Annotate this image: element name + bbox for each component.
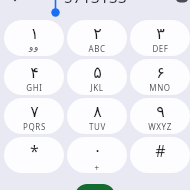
button[interactable]: ۰ <box>67 137 127 173</box>
staticText: ۸ <box>93 102 102 121</box>
staticText: JKL <box>90 82 104 93</box>
button[interactable]: ۱ <box>4 20 64 56</box>
staticText: PQRS <box>23 121 46 132</box>
button[interactable]: ۴ <box>4 59 64 95</box>
staticText: وو <box>29 42 39 52</box>
staticText: ABC <box>88 43 106 54</box>
staticText: # <box>155 140 166 162</box>
staticText: 5713133 <box>64 0 127 7</box>
button[interactable]: ۶ <box>130 59 190 95</box>
button[interactable]: ۲ <box>67 20 127 56</box>
staticText: DEF <box>152 43 169 54</box>
staticText: ۱ <box>30 24 39 43</box>
staticText: ۵ <box>93 63 102 82</box>
staticText: ۹ <box>156 102 165 121</box>
staticText: + <box>94 162 100 173</box>
staticText: ۷ <box>30 102 39 121</box>
staticText: MNO <box>149 82 171 93</box>
staticText: ۳ <box>156 24 165 43</box>
button[interactable]: ۹ <box>130 98 190 134</box>
button[interactable]: * <box>4 137 64 173</box>
staticText: ۴ <box>30 63 39 82</box>
staticText: WXYZ <box>148 121 172 132</box>
staticText: ۲ <box>93 24 102 43</box>
button[interactable]: ۵ <box>67 59 127 95</box>
button[interactable]: ۸ <box>67 98 127 134</box>
staticText: * <box>30 140 39 162</box>
button[interactable]: ۳ <box>130 20 190 56</box>
staticText: GHI <box>26 82 43 93</box>
button[interactable]: # <box>130 137 190 173</box>
staticText: ۶ <box>156 63 165 82</box>
button[interactable]: ۷ <box>4 98 64 134</box>
staticText: ۰ <box>93 141 102 160</box>
button[interactable]: Call <box>75 184 115 190</box>
staticText: TUV <box>89 121 106 132</box>
